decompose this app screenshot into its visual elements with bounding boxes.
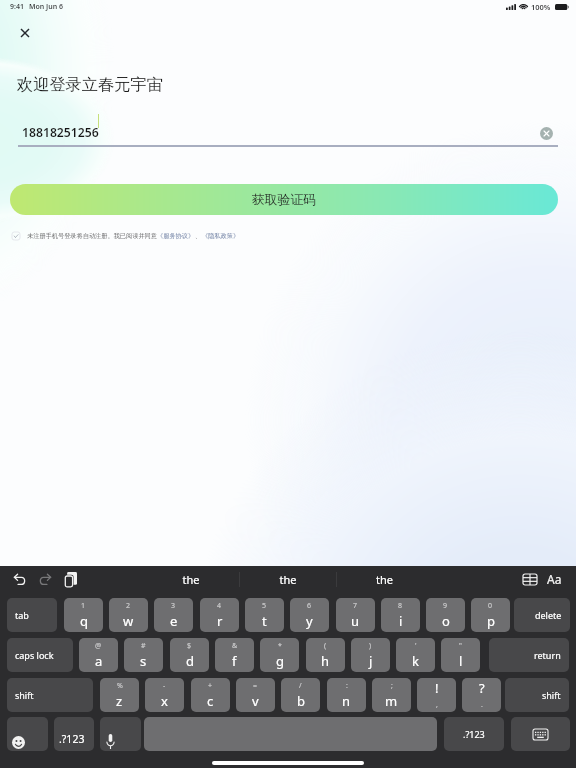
button[interactable]: shift: [7, 678, 93, 712]
staticText: f: [232, 652, 237, 670]
staticText: return: [534, 649, 561, 661]
button[interactable]: 3: [154, 598, 193, 632]
button[interactable]: caps lock: [7, 638, 73, 672]
staticText: b: [297, 692, 305, 710]
button[interactable]: !: [417, 678, 456, 712]
staticText: n: [342, 692, 351, 710]
button[interactable]: Keyboard layout: [523, 574, 537, 585]
staticText: o: [442, 612, 450, 630]
button[interactable]: 1: [64, 598, 103, 632]
staticText: m: [385, 692, 398, 710]
staticText: +: [208, 681, 213, 691]
staticText: q: [80, 612, 88, 630]
staticText: ,: [436, 700, 438, 710]
button[interactable]: $: [170, 638, 209, 672]
button[interactable]: Hide keyboard: [511, 717, 570, 751]
button[interactable]: 5: [245, 598, 284, 632]
button[interactable]: ?: [462, 678, 501, 712]
button[interactable]: /: [281, 678, 320, 712]
button[interactable]: #: [124, 638, 163, 672]
staticText: .?123: [463, 728, 485, 740]
button[interactable]: 《隐私政策》: [202, 232, 240, 240]
staticText: e: [170, 612, 178, 630]
staticText: -: [163, 681, 166, 691]
button[interactable]: Redo: [39, 574, 51, 585]
button[interactable]: Agree to terms: [12, 232, 20, 240]
staticText: 2: [126, 601, 131, 611]
button[interactable]: @: [79, 638, 118, 672]
button[interactable]: (: [306, 638, 345, 672]
button[interactable]: 获取验证码: [10, 184, 558, 215]
staticText: 100%: [531, 2, 551, 12]
button[interactable]: 2: [109, 598, 148, 632]
staticText: shift: [15, 689, 34, 701]
button[interactable]: the: [337, 572, 432, 587]
staticText: s: [140, 652, 147, 670]
button[interactable]: Close: [11, 19, 39, 47]
button[interactable]: 9: [426, 598, 465, 632]
staticText: =: [253, 681, 258, 691]
button[interactable]: :: [327, 678, 366, 712]
button[interactable]: ': [396, 638, 435, 672]
staticText: y: [306, 612, 313, 630]
button[interactable]: %: [100, 678, 139, 712]
button[interactable]: -: [145, 678, 184, 712]
button[interactable]: Dictation: [100, 717, 141, 751]
staticText: p: [487, 612, 495, 630]
staticText: delete: [535, 609, 562, 621]
button[interactable]: *: [260, 638, 299, 672]
staticText: z: [116, 692, 123, 710]
button[interactable]: Paste: [64, 572, 77, 588]
staticText: shift: [542, 689, 561, 701]
staticText: .: [481, 700, 483, 710]
staticText: 9: [443, 601, 448, 611]
staticText: 18818251256: [22, 124, 99, 141]
staticText: u: [351, 612, 360, 630]
button[interactable]: 《服务协议》: [157, 232, 195, 240]
staticText: 8: [398, 601, 403, 611]
staticText: %: [117, 681, 123, 691]
button[interactable]: ): [351, 638, 390, 672]
staticText: g: [276, 652, 284, 670]
button[interactable]: shift: [505, 678, 569, 712]
staticText: 未注册手机号登录将自动注册。我已阅读并同意: [27, 232, 157, 240]
button[interactable]: delete: [514, 598, 570, 632]
button[interactable]: 7: [336, 598, 375, 632]
staticText: @: [95, 641, 102, 651]
staticText: i: [399, 612, 403, 630]
button[interactable]: =: [236, 678, 275, 712]
staticText: 4: [217, 601, 222, 611]
staticText: !: [435, 679, 439, 697]
button[interactable]: tab: [7, 598, 57, 632]
button[interactable]: return: [489, 638, 569, 672]
button[interactable]: +: [191, 678, 230, 712]
staticText: 获取验证码: [252, 192, 316, 208]
button[interactable]: &: [215, 638, 254, 672]
button[interactable]: ": [441, 638, 480, 672]
button[interactable]: 4: [200, 598, 239, 632]
staticText: l: [459, 652, 463, 670]
button[interactable]: Emoji: [7, 717, 48, 751]
button[interactable]: 0: [471, 598, 510, 632]
button[interactable]: .?123: [54, 717, 94, 751]
button[interactable]: .?123: [444, 717, 504, 751]
staticText: Mon Jun 6: [29, 2, 64, 12]
button[interactable]: Clear text: [535, 122, 557, 144]
button[interactable]: Undo: [14, 574, 26, 585]
button[interactable]: Aa: [547, 571, 562, 587]
staticText: v: [252, 692, 259, 710]
button[interactable]: the: [143, 572, 239, 587]
button[interactable]: 6: [290, 598, 329, 632]
staticText: 7: [353, 601, 358, 611]
staticText: 9:41: [10, 2, 24, 12]
staticText: :: [346, 681, 348, 691]
button[interactable]: 8: [381, 598, 420, 632]
staticText: x: [161, 692, 168, 710]
staticText: $: [187, 641, 192, 651]
button[interactable]: ;: [372, 678, 411, 712]
staticText: (: [324, 641, 327, 651]
staticText: j: [369, 652, 373, 670]
staticText: .?123: [59, 732, 85, 746]
button[interactable]: the: [240, 572, 336, 587]
